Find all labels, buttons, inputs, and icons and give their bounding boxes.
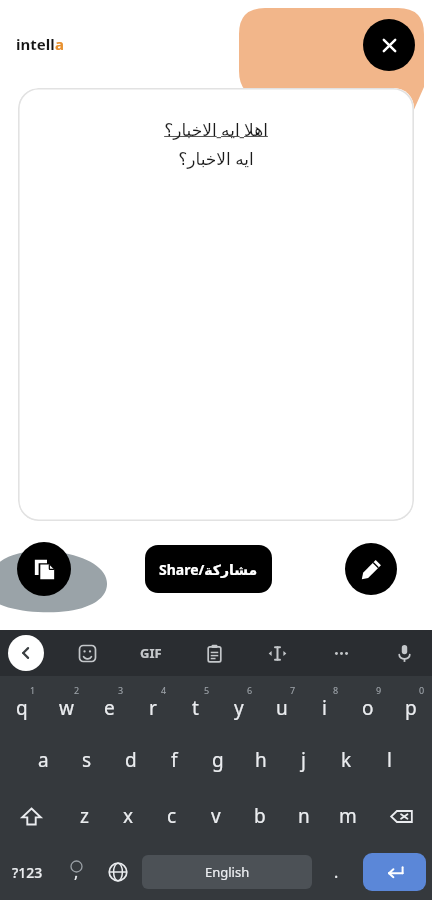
button[interactable]: j <box>282 732 325 788</box>
staticText: r <box>149 695 157 721</box>
button[interactable]: Edit <box>345 543 397 595</box>
button[interactable]: Backspace <box>370 788 432 844</box>
staticText: c <box>167 803 177 829</box>
staticText: . <box>334 861 339 883</box>
staticText: j <box>301 747 306 773</box>
staticText: 2 <box>74 684 80 696</box>
button[interactable]: r <box>131 676 174 732</box>
staticText: 0 <box>419 684 425 696</box>
staticText: m <box>339 803 357 829</box>
button[interactable]: Close <box>363 19 415 71</box>
button[interactable]: g <box>196 732 239 788</box>
button[interactable]: n <box>282 788 326 844</box>
button[interactable]: a <box>21 732 65 788</box>
button[interactable]: x <box>106 788 150 844</box>
staticText: 3 <box>118 684 124 696</box>
button[interactable]: More options <box>321 633 361 673</box>
staticText: s <box>82 747 92 773</box>
staticText: o <box>362 695 374 721</box>
button[interactable]: k <box>325 732 368 788</box>
staticText: v <box>211 803 221 829</box>
button[interactable]: e <box>88 676 131 732</box>
button[interactable]: Change language <box>97 844 139 900</box>
staticText: 1 <box>30 684 36 696</box>
button[interactable]: Shift <box>0 788 62 844</box>
staticText: k <box>341 747 352 773</box>
staticText: u <box>276 695 288 721</box>
staticText: z <box>80 803 89 829</box>
button[interactable]: Voice input <box>384 633 424 673</box>
staticText: 7 <box>290 684 296 696</box>
button[interactable]: s <box>65 732 109 788</box>
staticText: b <box>254 803 266 829</box>
staticText: GIF <box>140 644 162 662</box>
button[interactable]: Text editing <box>257 633 297 673</box>
staticText: x <box>123 803 134 829</box>
staticText: n <box>298 803 310 829</box>
staticText: t <box>192 695 199 721</box>
button[interactable]: z <box>62 788 106 844</box>
staticText: , <box>74 861 79 883</box>
button[interactable]: q <box>0 676 44 732</box>
button[interactable]: Back <box>8 635 44 671</box>
button[interactable]: h <box>239 732 282 788</box>
button[interactable]: Enter <box>363 853 426 891</box>
button[interactable]: ?123 <box>0 844 55 900</box>
staticText: 5 <box>204 684 210 696</box>
staticText: g <box>212 747 224 773</box>
staticText: h <box>255 747 267 773</box>
button[interactable]: English <box>142 855 312 889</box>
button[interactable]: f <box>153 732 196 788</box>
staticText: e <box>104 695 115 721</box>
staticText: Share/مشاركة <box>159 560 258 579</box>
button[interactable]: u <box>260 676 303 732</box>
button[interactable]: t <box>174 676 217 732</box>
staticText: f <box>171 747 178 773</box>
staticText: 8 <box>333 684 339 696</box>
staticText: q <box>16 695 28 721</box>
staticText: p <box>405 695 417 721</box>
staticText: l <box>387 747 392 773</box>
button[interactable]: d <box>109 732 153 788</box>
button[interactable]: Share/مشاركة <box>145 545 272 593</box>
button[interactable]: y <box>217 676 260 732</box>
button[interactable]: Copy <box>17 542 71 596</box>
staticText: w <box>59 695 74 721</box>
staticText: 9 <box>376 684 382 696</box>
staticText: i <box>322 695 327 721</box>
button[interactable]: . <box>315 844 357 900</box>
button[interactable]: اهلا ايه الاخبار؟ <box>18 88 414 521</box>
staticText: d <box>125 747 137 773</box>
staticText: 4 <box>161 684 167 696</box>
button[interactable]: Comma and emoji <box>55 844 97 900</box>
button[interactable]: c <box>150 788 194 844</box>
staticText: 6 <box>247 684 253 696</box>
staticText: ?123 <box>12 863 43 882</box>
button[interactable]: o <box>346 676 389 732</box>
button[interactable]: Clipboard <box>194 633 234 673</box>
button[interactable]: v <box>194 788 238 844</box>
staticText: a <box>38 747 49 773</box>
button[interactable]: GIF <box>131 633 171 673</box>
button[interactable]: m <box>326 788 370 844</box>
staticText: English <box>205 863 250 881</box>
staticText: اهلا ايه الاخبار؟ <box>164 118 268 141</box>
button[interactable]: l <box>368 732 411 788</box>
button[interactable]: Stickers <box>67 633 107 673</box>
staticText: ايه الاخبار؟ <box>178 147 254 170</box>
staticText: y <box>234 695 244 721</box>
button[interactable]: w <box>44 676 88 732</box>
button[interactable]: i <box>303 676 346 732</box>
button[interactable]: p <box>389 676 432 732</box>
staticText: intell <box>16 34 55 54</box>
staticText: a <box>55 34 64 54</box>
button[interactable]: b <box>238 788 282 844</box>
